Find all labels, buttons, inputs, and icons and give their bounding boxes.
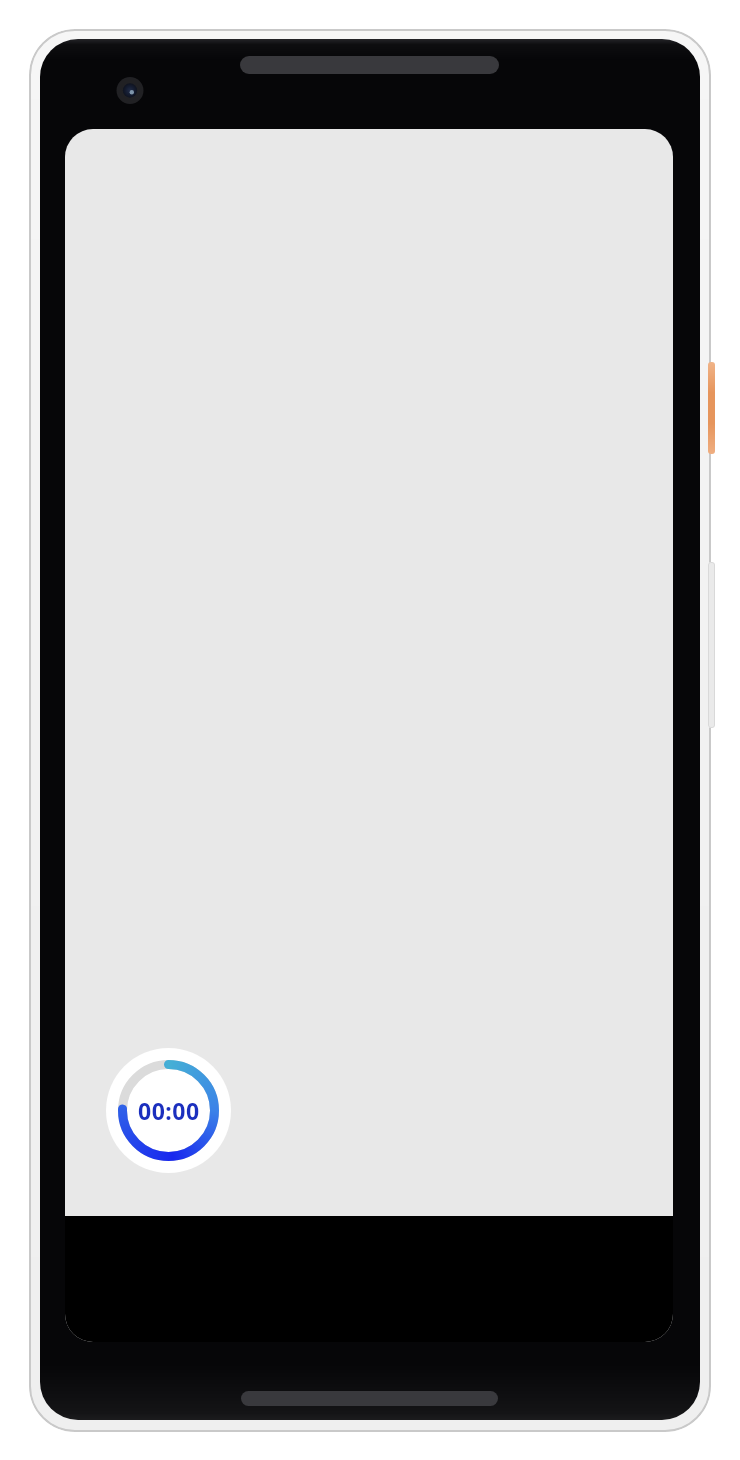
button[interactable]: 00:00 (106, 1048, 231, 1173)
staticText: 00:00 (138, 1095, 200, 1126)
